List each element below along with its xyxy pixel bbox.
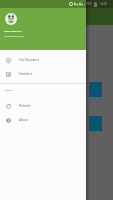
button[interactable]: Top Numbers — [0, 53, 86, 67]
staticText: 79% — [86, 2, 92, 6]
staticText: Statistics — [19, 72, 33, 76]
button[interactable]: Refresh — [0, 99, 86, 113]
button[interactable]: Statistics — [0, 67, 86, 81]
button[interactable]: About — [0, 113, 86, 127]
staticText: Options — [5, 89, 13, 92]
staticText: 14:07 — [100, 2, 108, 6]
staticText: Top Numbers — [19, 58, 40, 62]
staticText: About — [19, 118, 29, 122]
staticText: www.lottohelper.co.uk — [4, 35, 24, 38]
staticText: Refresh — [19, 104, 31, 108]
staticText: Lotto Helper UK — [4, 30, 22, 33]
button[interactable]: Profile — [5, 13, 17, 25]
button[interactable] — [0, 0, 113, 200]
